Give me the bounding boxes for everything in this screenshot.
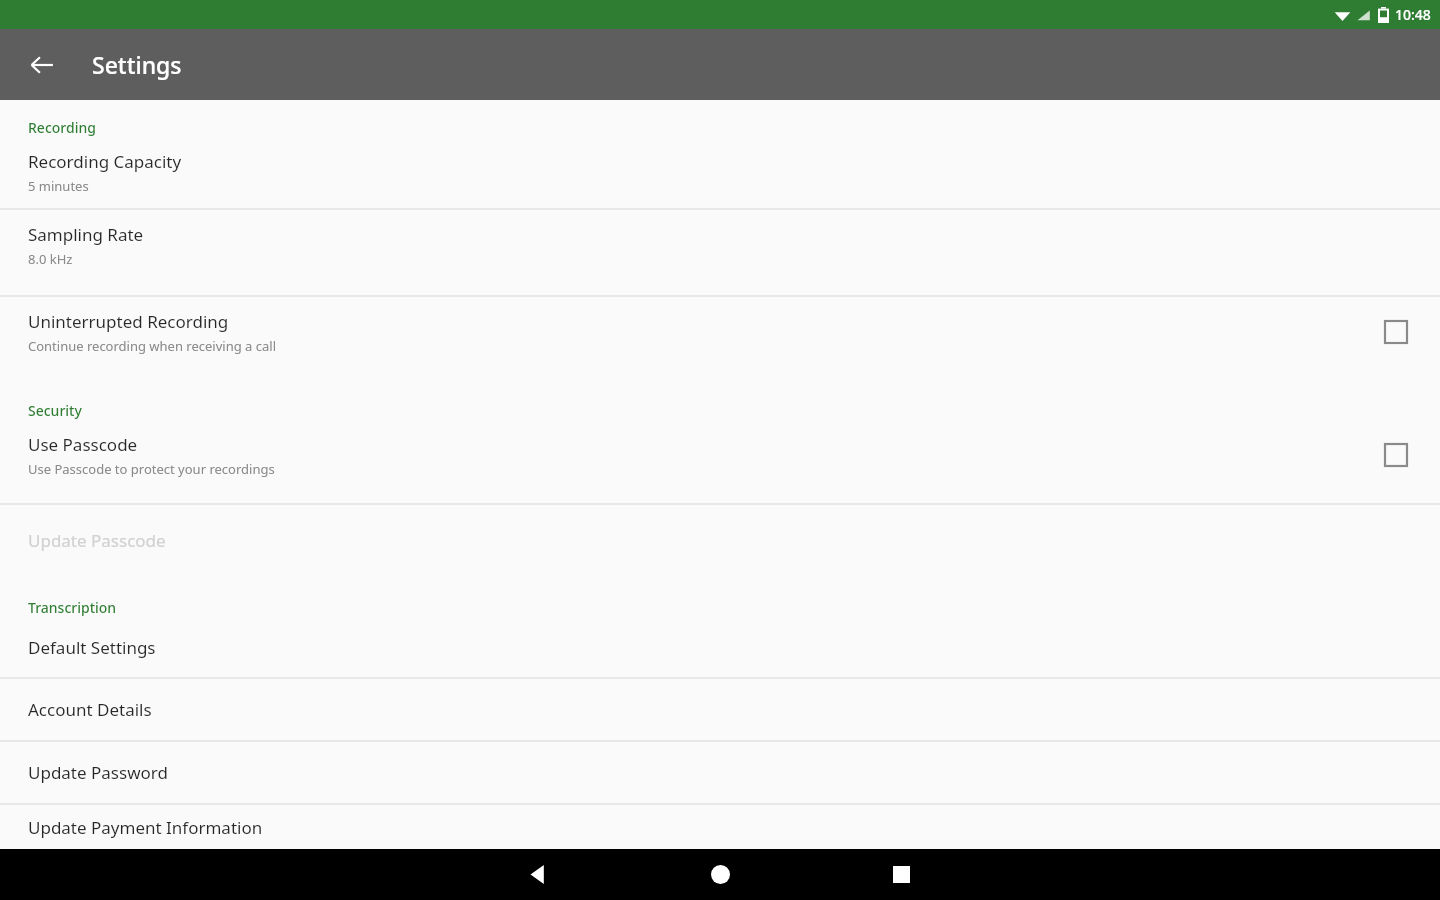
staticText: Update Passcode bbox=[28, 529, 166, 552]
button[interactable]: Home bbox=[684, 849, 756, 900]
staticText: Uninterrupted Recording bbox=[28, 310, 229, 333]
staticText: Update Password bbox=[28, 761, 168, 784]
button[interactable]: Back bbox=[502, 849, 574, 900]
button[interactable]: Account Details bbox=[0, 679, 1440, 740]
staticText: Account Details bbox=[28, 698, 152, 721]
staticText: Use Passcode to protect your recordings bbox=[28, 460, 275, 478]
staticText: Transcription bbox=[28, 598, 117, 617]
button[interactable]: Update Password bbox=[0, 742, 1440, 803]
staticText: Use Passcode bbox=[28, 433, 138, 456]
button[interactable]: Sampling Rate bbox=[0, 210, 1440, 295]
staticText: Recording Capacity bbox=[28, 150, 182, 173]
button[interactable]: Back bbox=[16, 39, 68, 91]
button[interactable]: Update Payment Information bbox=[0, 805, 1440, 849]
staticText: Security bbox=[28, 401, 82, 420]
staticText: Update Payment Information bbox=[28, 816, 263, 839]
button[interactable]: Recent apps bbox=[865, 849, 937, 900]
staticText: Settings bbox=[92, 49, 182, 80]
staticText: Recording bbox=[28, 118, 96, 137]
button[interactable]: Use Passcode bbox=[0, 420, 1440, 503]
button[interactable]: Recording Capacity bbox=[0, 137, 1440, 208]
staticText: Sampling Rate bbox=[28, 223, 144, 246]
button[interactable]: Uninterrupted Recording bbox=[0, 297, 1440, 381]
staticText: 8.0 kHz bbox=[28, 250, 73, 268]
button[interactable]: Default Settings bbox=[0, 617, 1440, 677]
staticText: 5 minutes bbox=[28, 177, 89, 195]
staticText: 10:48 bbox=[1395, 5, 1431, 24]
staticText: Continue recording when receiving a call bbox=[28, 337, 277, 355]
staticText: Default Settings bbox=[28, 636, 156, 659]
